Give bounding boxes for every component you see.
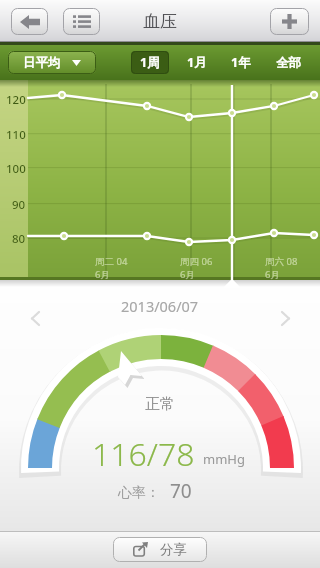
staticText: 2013/06/07: [121, 296, 199, 316]
staticText: 周二 04: [95, 255, 128, 268]
staticText: 70: [170, 478, 192, 504]
staticText: 80: [12, 231, 26, 245]
button[interactable]: [24, 308, 46, 328]
button[interactable]: [275, 308, 297, 328]
staticText: 120: [6, 92, 26, 106]
button[interactable]: [63, 8, 100, 35]
staticText: 6月: [95, 268, 110, 281]
staticText: 正常: [145, 395, 175, 414]
staticText: 1月: [187, 54, 207, 71]
button[interactable]: 1年: [224, 51, 257, 74]
staticText: 全部: [276, 55, 301, 71]
staticText: 周四 06: [180, 255, 213, 268]
button[interactable]: 1月: [180, 51, 213, 74]
staticText: 心率：: [118, 484, 160, 502]
staticText: 日平均: [23, 55, 61, 71]
button[interactable]: 分享: [113, 537, 207, 562]
staticText: 周六 08: [265, 255, 298, 268]
staticText: 110: [6, 127, 26, 141]
staticText: 6月: [180, 268, 195, 281]
staticText: 100: [6, 161, 26, 175]
button[interactable]: [11, 8, 48, 35]
staticText: 分享: [160, 541, 187, 558]
button[interactable]: 日平均: [8, 51, 96, 74]
staticText: 1年: [231, 54, 251, 71]
button[interactable]: [270, 8, 309, 35]
button[interactable]: 全部: [272, 51, 305, 74]
staticText: 1周: [140, 54, 160, 71]
button[interactable]: 1周: [131, 51, 169, 74]
staticText: mmHg: [203, 450, 245, 468]
staticText: 116/78: [92, 432, 195, 470]
staticText: 90: [12, 197, 26, 211]
staticText: 6月: [265, 268, 280, 281]
staticText: 血压: [143, 11, 177, 32]
